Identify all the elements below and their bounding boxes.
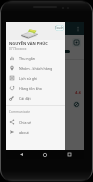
staticText: 4.4 <box>75 90 81 95</box>
button[interactable]: Chia sẻ <box>6 117 65 127</box>
button[interactable]: Photo <box>72 38 81 47</box>
button[interactable]: Nhóm - khách hàng <box>6 63 65 73</box>
button[interactable]: about <box>6 127 65 137</box>
button[interactable]: More options <box>74 25 82 33</box>
button[interactable]: Action <box>73 101 80 108</box>
staticText: NGUYỄN VĂN PHÚC <box>9 41 48 46</box>
button[interactable]: Hàng tồn kho <box>6 83 65 93</box>
staticText: 0773xxxxxx <box>9 47 27 51</box>
button[interactable]: Touch <box>55 25 64 31</box>
button[interactable]: Recent apps <box>60 150 78 159</box>
staticText: Touch <box>55 26 64 30</box>
button[interactable]: Lịch sử ghi <box>6 73 65 83</box>
staticText: Lịch sử ghi <box>19 76 38 81</box>
staticText: Communicate <box>9 110 30 114</box>
staticText: Chia sẻ <box>19 120 32 125</box>
staticText: about <box>19 130 29 135</box>
staticText: Hàng tồn kho <box>19 86 42 91</box>
button[interactable]: Back <box>12 150 30 159</box>
staticText: Cài đặt <box>19 96 31 101</box>
button[interactable]: Home <box>36 150 54 159</box>
staticText: Nhóm - khách hàng <box>19 66 53 71</box>
button[interactable]: Thu ngân <box>6 53 65 63</box>
button[interactable]: Cài đặt <box>6 93 65 103</box>
staticText: Thu ngân <box>19 56 36 61</box>
